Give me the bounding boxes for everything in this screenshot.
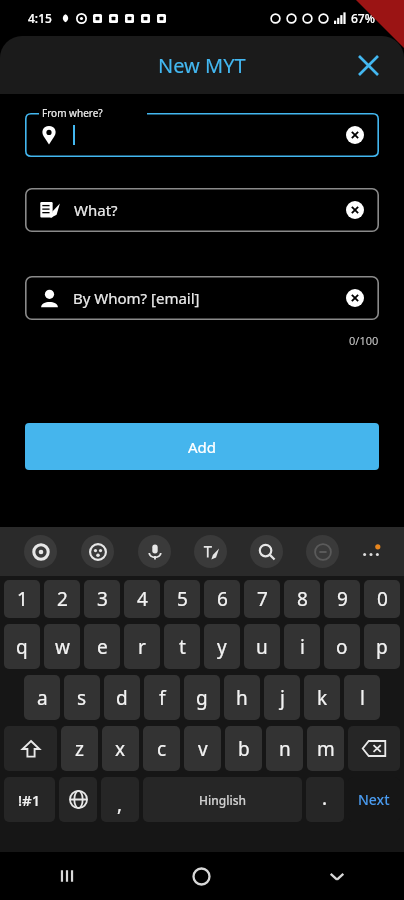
button[interactable]: b <box>225 726 262 771</box>
button[interactable]: Assign to me <box>25 422 104 444</box>
staticText: f <box>159 685 166 711</box>
staticText: c <box>157 736 167 762</box>
staticText: s <box>77 685 87 711</box>
staticText: h <box>236 685 248 711</box>
button[interactable]: Clear <box>341 121 369 149</box>
button[interactable]: j <box>264 675 300 720</box>
button[interactable]: !#1 <box>4 777 55 822</box>
button[interactable]: a <box>24 675 60 720</box>
staticText: 67% <box>351 10 375 26</box>
staticText: 0/100 <box>349 333 379 348</box>
staticText: d <box>116 685 128 711</box>
button[interactable]: Hinglish <box>143 777 302 822</box>
button[interactable]: , <box>101 777 139 822</box>
button[interactable]: 7 <box>244 580 280 618</box>
staticText: u <box>256 634 268 660</box>
button[interactable]: 8 <box>284 580 320 618</box>
staticText: e <box>97 634 108 660</box>
button[interactable]: Translate <box>294 527 350 576</box>
staticText: o <box>336 634 348 660</box>
button[interactable]: k <box>304 675 340 720</box>
button[interactable]: Settings <box>12 527 69 576</box>
button[interactable]: f <box>144 675 180 720</box>
staticText: y <box>217 634 227 660</box>
staticText: Add <box>188 437 217 457</box>
staticText: p <box>376 634 388 660</box>
staticText: 4:15 <box>28 10 52 26</box>
button[interactable]: 6 <box>204 580 240 618</box>
button[interactable]: Change language <box>59 777 97 822</box>
button[interactable]: Hide keyboard <box>269 852 404 900</box>
button[interactable]: o <box>324 624 360 669</box>
staticText: Assign to me <box>25 424 104 442</box>
button[interactable]: u <box>244 624 280 669</box>
button[interactable]: l <box>344 675 380 720</box>
staticText: v <box>198 736 208 762</box>
button[interactable]: m <box>307 726 344 771</box>
button[interactable]: y <box>204 624 240 669</box>
button[interactable]: Home <box>134 852 269 900</box>
button[interactable]: 0 <box>364 580 400 618</box>
staticText: t <box>179 634 186 660</box>
button[interactable]: Shift <box>4 726 57 771</box>
button[interactable]: 9 <box>324 580 360 618</box>
button[interactable]: g <box>184 675 220 720</box>
staticText: 6 <box>217 586 228 612</box>
button[interactable]: d <box>104 675 140 720</box>
button[interactable]: Next <box>348 777 400 822</box>
button[interactable]: t <box>164 624 200 669</box>
button[interactable]: x <box>102 726 139 771</box>
staticText: Hinglish <box>199 792 247 808</box>
staticText: . <box>322 785 328 811</box>
staticText: j <box>280 685 285 711</box>
staticText: New MYT <box>158 52 246 79</box>
staticText: m <box>317 736 335 762</box>
button[interactable]: Search <box>238 527 294 576</box>
button[interactable]: . <box>306 777 344 822</box>
staticText: z <box>75 736 84 762</box>
staticText: i <box>300 634 305 660</box>
staticText: 1 <box>17 586 28 612</box>
button[interactable]: More options <box>350 527 392 576</box>
staticText: , <box>117 791 123 817</box>
button[interactable]: Recents <box>0 852 134 900</box>
staticText: g <box>196 685 208 711</box>
button[interactable]: Clear <box>341 196 369 224</box>
staticText: a <box>37 685 48 711</box>
staticText: n <box>279 736 291 762</box>
button[interactable]: Clear <box>341 284 369 312</box>
staticText: Next <box>358 790 390 809</box>
button[interactable]: Voice input <box>126 527 182 576</box>
button[interactable]: c <box>143 726 180 771</box>
staticText: b <box>238 736 250 762</box>
button[interactable]: 2 <box>44 580 80 618</box>
button[interactable]: 3 <box>84 580 120 618</box>
button[interactable]: Backspace <box>348 726 400 771</box>
staticText: w <box>55 634 70 660</box>
staticText: By Whom? [email] <box>73 288 200 308</box>
button[interactable]: s <box>64 675 100 720</box>
staticText: l <box>360 685 365 711</box>
button[interactable]: h <box>224 675 260 720</box>
button[interactable]: Handwriting <box>182 527 238 576</box>
staticText: 7 <box>257 586 268 612</box>
button[interactable]: 5 <box>164 580 200 618</box>
button[interactable]: Close <box>350 47 386 83</box>
button[interactable]: z <box>61 726 98 771</box>
staticText: 5 <box>177 586 188 612</box>
staticText: k <box>317 685 328 711</box>
button[interactable]: n <box>266 726 303 771</box>
button[interactable]: q <box>4 624 40 669</box>
button[interactable]: Add <box>25 423 379 470</box>
staticText: 3 <box>97 586 108 612</box>
button[interactable]: 4 <box>124 580 160 618</box>
button[interactable]: r <box>124 624 160 669</box>
button[interactable]: Stickers <box>69 527 126 576</box>
staticText: r <box>138 634 146 660</box>
button[interactable]: v <box>184 726 221 771</box>
button[interactable]: 1 <box>4 580 40 618</box>
button[interactable]: p <box>364 624 400 669</box>
button[interactable]: w <box>44 624 80 669</box>
button[interactable]: e <box>84 624 120 669</box>
button[interactable]: i <box>284 624 320 669</box>
